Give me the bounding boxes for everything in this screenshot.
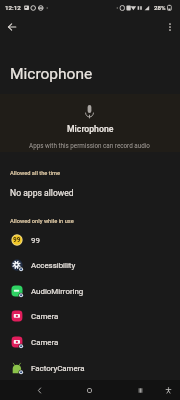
button[interactable]: FactoryCamera (0, 355, 180, 380)
staticText: Camera (31, 338, 59, 347)
staticText: Allowed all the time (10, 170, 61, 177)
button[interactable]: Back (28, 380, 50, 400)
button[interactable]: More options (159, 16, 180, 38)
button[interactable]: Recent apps (129, 380, 151, 400)
staticText: 99 (31, 236, 40, 245)
staticText: Camera (31, 312, 59, 321)
staticText: 12:12 (5, 4, 21, 11)
button[interactable]: Camera (0, 303, 180, 328)
staticText: Apps with this permission can record aud… (29, 142, 150, 149)
button[interactable]: Home (78, 380, 100, 400)
button[interactable]: 99 (0, 227, 180, 252)
staticText: Microphone (10, 65, 93, 83)
staticText: 28% (154, 4, 166, 11)
button[interactable]: AudioMirroring (0, 278, 180, 303)
staticText: No apps allowed (10, 188, 74, 198)
staticText: FactoryCamera (31, 364, 85, 373)
button[interactable]: Accessibility (0, 252, 180, 277)
staticText: 99 (13, 236, 21, 244)
staticText: Accessibility (31, 261, 76, 270)
button[interactable]: Camera (0, 329, 180, 354)
staticText: Microphone (67, 124, 114, 134)
staticText: Allowed only while in use (10, 218, 74, 225)
staticText: AudioMirroring (31, 287, 84, 296)
button[interactable]: Accessibility (157, 380, 179, 400)
button[interactable]: Back (1, 16, 23, 38)
